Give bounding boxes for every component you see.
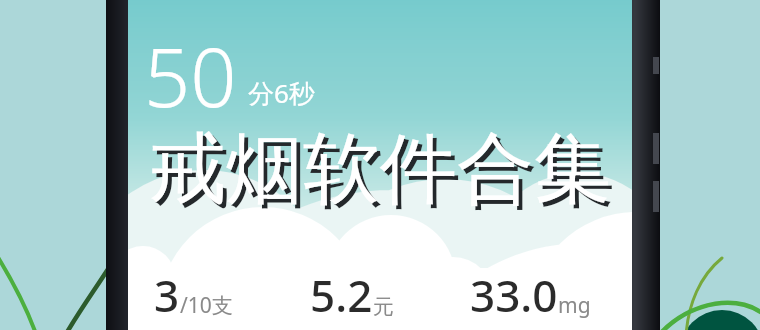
staticText: 元 — [373, 294, 394, 320]
staticText: 50 — [144, 20, 237, 130]
staticText: /10支 — [180, 291, 233, 320]
staticText: 戒烟软件合集 — [153, 125, 615, 222]
staticText: mg — [558, 291, 591, 320]
staticText: 5.2 — [310, 265, 373, 325]
staticText: 33.0 — [470, 265, 558, 325]
staticText: 戒烟软件合集 — [149, 121, 611, 218]
staticText: 分6秒 — [248, 75, 315, 111]
staticText: 3 — [154, 265, 180, 325]
